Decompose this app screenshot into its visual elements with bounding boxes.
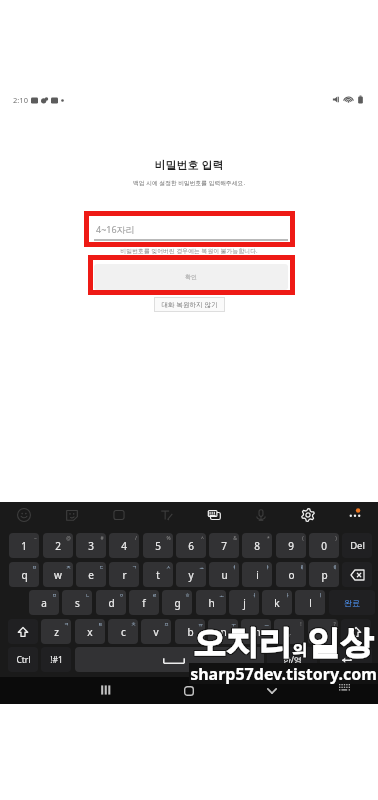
button[interactable]: z bbox=[41, 619, 71, 644]
staticText: t bbox=[156, 568, 160, 582]
button[interactable]: Stickers bbox=[59, 502, 85, 528]
button[interactable]: 2 bbox=[43, 533, 73, 558]
staticText: ? bbox=[333, 621, 336, 628]
button[interactable]: w bbox=[43, 562, 73, 587]
button[interactable]: Keyboard modes bbox=[201, 502, 227, 528]
button[interactable]: q bbox=[9, 562, 39, 587]
staticText: ㅔ bbox=[332, 564, 337, 570]
button[interactable]: 6 bbox=[176, 533, 206, 558]
button[interactable]: Handwriting bbox=[153, 502, 179, 528]
staticText: ㅗ bbox=[219, 592, 224, 598]
button[interactable]: a bbox=[29, 590, 59, 615]
button[interactable]: 5 bbox=[143, 533, 173, 558]
button[interactable]: 4 bbox=[109, 533, 139, 558]
button[interactable]: 완료 bbox=[329, 590, 375, 615]
button[interactable]: Emoji bbox=[11, 502, 37, 528]
button[interactable]: h bbox=[196, 590, 226, 615]
button[interactable]: Settings bbox=[295, 502, 321, 528]
button[interactable]: Voice input bbox=[248, 502, 274, 528]
button[interactable]: b bbox=[175, 619, 205, 644]
staticText: 4 bbox=[121, 539, 127, 553]
staticText: . bbox=[322, 625, 325, 639]
button[interactable]: n bbox=[208, 619, 238, 644]
button[interactable]: , bbox=[274, 619, 304, 644]
staticText: ㅎ bbox=[185, 592, 190, 598]
staticText: ㅡ bbox=[264, 621, 269, 627]
button[interactable]: 0 bbox=[309, 533, 339, 558]
staticText: ㅣ bbox=[318, 592, 323, 598]
button[interactable] bbox=[75, 647, 264, 672]
button[interactable]: o bbox=[276, 562, 306, 587]
button[interactable]: x bbox=[75, 619, 105, 644]
button[interactable]: j bbox=[229, 590, 259, 615]
button[interactable]: Change keyboard bbox=[335, 678, 355, 698]
button[interactable]: 1 bbox=[9, 533, 39, 558]
button[interactable]: 3 bbox=[76, 533, 106, 558]
staticText: 오치리 bbox=[193, 623, 292, 665]
button[interactable]: e bbox=[76, 562, 106, 587]
staticText: ㅅ bbox=[166, 564, 171, 570]
staticText: ㅜ bbox=[231, 621, 236, 627]
button[interactable]: More options bbox=[342, 502, 368, 528]
button[interactable]: p bbox=[309, 562, 339, 587]
staticText: 비밀번호 입력 bbox=[0, 157, 378, 172]
button[interactable]: t bbox=[143, 562, 173, 587]
button[interactable]: g bbox=[162, 590, 192, 615]
button[interactable]: . bbox=[308, 619, 338, 644]
button[interactable]: bksp bbox=[342, 562, 372, 587]
staticText: 확인 bbox=[185, 273, 197, 281]
button[interactable]: 7 bbox=[209, 533, 239, 558]
button[interactable]: c bbox=[108, 619, 138, 644]
staticText: 8 bbox=[254, 539, 260, 553]
staticText: ㅑ bbox=[265, 564, 270, 570]
staticText: ㅛ bbox=[199, 564, 204, 570]
staticText: ㅍ bbox=[164, 621, 169, 627]
staticText: x bbox=[87, 625, 93, 639]
button[interactable]: Ctrl bbox=[8, 647, 38, 672]
button[interactable]: 확인 bbox=[94, 264, 288, 290]
staticText: 일상 bbox=[307, 623, 373, 665]
staticText: n bbox=[220, 625, 227, 639]
staticText: ㅌ bbox=[98, 621, 103, 627]
staticText: % bbox=[166, 535, 171, 542]
staticText: 의 bbox=[291, 640, 306, 659]
button[interactable]: Home bbox=[176, 678, 202, 704]
staticText: 비밀번호를 잊어버린 경우에는 복원이 불가능합니다. bbox=[0, 247, 378, 255]
staticText: ㅠ bbox=[198, 621, 203, 627]
button[interactable]: 한/영 bbox=[267, 647, 317, 672]
button[interactable]: m bbox=[241, 619, 271, 644]
staticText: sharp57dev.tistory.com bbox=[190, 663, 377, 684]
button[interactable]: u bbox=[209, 562, 239, 587]
button[interactable]: y bbox=[176, 562, 206, 587]
button[interactable] bbox=[320, 647, 372, 672]
button[interactable]: 8 bbox=[242, 533, 272, 558]
button[interactable]: d bbox=[96, 590, 126, 615]
button[interactable]: shift bbox=[8, 619, 38, 644]
button[interactable]: f bbox=[129, 590, 159, 615]
button[interactable]: !#1 bbox=[41, 647, 71, 672]
button[interactable]: s bbox=[62, 590, 92, 615]
staticText: u bbox=[221, 568, 228, 582]
button[interactable]: Del bbox=[342, 533, 372, 558]
button[interactable]: r bbox=[109, 562, 139, 587]
staticText: d bbox=[108, 596, 115, 610]
button[interactable]: Recent apps bbox=[93, 677, 119, 703]
button[interactable]: Hide keyboard bbox=[259, 678, 285, 704]
staticText: 2 bbox=[55, 539, 61, 553]
button[interactable]: 9 bbox=[276, 533, 306, 558]
button[interactable]: i bbox=[242, 562, 272, 587]
staticText: 의 bbox=[291, 641, 306, 660]
staticText: 백업 시에 설정한 비밀번호를 입력해주세요. bbox=[0, 179, 378, 187]
button[interactable]: GIF bbox=[106, 502, 132, 528]
staticText: 의 bbox=[292, 642, 307, 661]
staticText: 0 bbox=[321, 539, 327, 553]
button[interactable]: v bbox=[141, 619, 171, 644]
button[interactable]: l bbox=[295, 590, 325, 615]
staticText: 일상 bbox=[306, 622, 372, 664]
button[interactable]: 대화 복원하지 않기 bbox=[154, 297, 225, 312]
staticText: ㅕ bbox=[232, 564, 237, 570]
button[interactable]: k bbox=[262, 590, 292, 615]
staticText: 오치리 bbox=[193, 622, 292, 664]
button[interactable]: shift bbox=[341, 619, 371, 644]
staticText: f bbox=[142, 596, 146, 610]
